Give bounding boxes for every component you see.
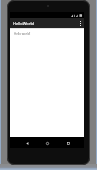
staticText: Hello world! xyxy=(14,32,31,36)
button[interactable]: Home xyxy=(43,139,51,147)
button[interactable]: More options xyxy=(80,21,81,26)
button[interactable]: Back xyxy=(23,139,31,147)
button[interactable]: Recent apps xyxy=(64,139,72,147)
staticText: HelloWorld xyxy=(13,21,34,26)
